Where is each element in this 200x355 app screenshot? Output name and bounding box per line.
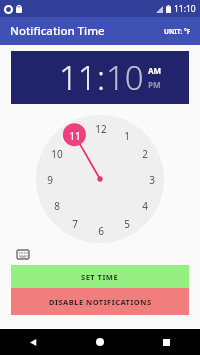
button[interactable]: Clock face, choose hour <box>36 115 164 243</box>
staticText: 10 <box>51 147 63 161</box>
staticText: 5 <box>124 217 130 231</box>
staticText: DISABLE NOTIFICATIONS <box>49 297 152 307</box>
button[interactable]: Switch to keyboard input <box>15 247 30 262</box>
staticText: 12 <box>95 122 107 136</box>
button[interactable]: 2 <box>135 144 154 163</box>
button[interactable]: 10 <box>47 144 66 163</box>
button[interactable]: PM <box>148 79 161 90</box>
staticText: 9 <box>47 173 53 187</box>
staticText: 11:10 <box>174 3 196 15</box>
button[interactable]: 11 <box>59 55 97 100</box>
staticText: AM <box>148 65 162 76</box>
button[interactable]: 11 <box>65 126 84 145</box>
button[interactable]: Home <box>66 329 133 355</box>
button[interactable]: DISABLE NOTIFICATIONS <box>11 288 189 315</box>
staticText: 3 <box>149 173 155 187</box>
button[interactable]: Recent apps <box>133 329 200 355</box>
staticText: 11 <box>69 129 81 143</box>
button[interactable]: AM <box>148 65 162 76</box>
button[interactable]: 10 <box>106 55 144 100</box>
button[interactable]: 6 <box>91 221 110 240</box>
button[interactable]: 9 <box>40 170 59 189</box>
staticText: 4 <box>142 199 148 213</box>
staticText: Notification Time <box>10 23 105 39</box>
button[interactable]: 1 <box>117 126 136 145</box>
staticText: 6 <box>98 224 104 238</box>
button[interactable]: 7 <box>65 214 84 233</box>
button[interactable]: 5 <box>117 214 136 233</box>
staticText: 8 <box>54 199 60 213</box>
staticText: UNIT: °F <box>164 27 191 36</box>
button[interactable]: 12 <box>91 119 110 138</box>
staticText: : <box>97 55 106 100</box>
staticText: SET TIME <box>81 272 119 282</box>
staticText: PM <box>148 79 161 90</box>
button[interactable]: 3 <box>142 170 161 189</box>
button[interactable]: 4 <box>135 196 154 215</box>
button[interactable]: Back <box>0 329 66 355</box>
button[interactable]: 8 <box>47 196 66 215</box>
staticText: 11 <box>59 55 97 100</box>
button[interactable]: UNIT: °F <box>155 21 200 42</box>
button[interactable]: SET TIME <box>11 265 189 288</box>
staticText: 7 <box>72 217 78 231</box>
staticText: 2 <box>142 147 148 161</box>
staticText: 10 <box>106 55 144 100</box>
staticText: 1 <box>124 129 130 143</box>
